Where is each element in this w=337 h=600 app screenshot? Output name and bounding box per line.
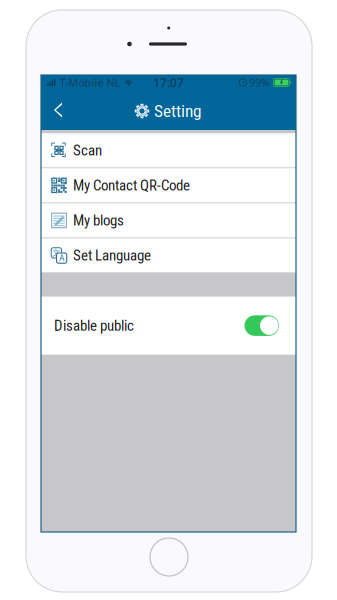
- staticText: Scan: [73, 142, 102, 159]
- button[interactable]: Scan: [41, 133, 296, 167]
- staticText: Setting: [154, 101, 202, 121]
- staticText: My Contact QR-Code: [73, 177, 190, 194]
- button[interactable]: Back: [41, 90, 75, 130]
- staticText: T-Mobile NL: [59, 75, 120, 90]
- staticText: 99%: [249, 75, 270, 90]
- staticText: Set Language: [73, 247, 151, 264]
- button[interactable]: Disable public: [41, 297, 296, 355]
- staticText: Disable public: [54, 317, 134, 334]
- staticText: A: [59, 253, 64, 263]
- button[interactable]: 文: [41, 238, 296, 272]
- staticText: 17:07: [153, 74, 184, 90]
- staticText: My blogs: [73, 212, 124, 229]
- button[interactable]: My blogs: [41, 203, 296, 237]
- button[interactable]: My Contact QR-Code: [41, 168, 296, 202]
- staticText: 文: [52, 248, 60, 258]
